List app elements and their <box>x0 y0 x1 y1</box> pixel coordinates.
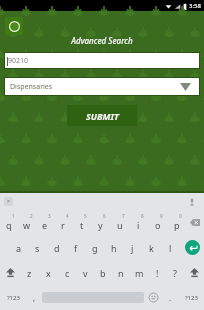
staticText: t <box>80 219 84 231</box>
staticText: ?123 <box>7 294 20 302</box>
button[interactable]: SUBMIT <box>67 105 137 126</box>
button[interactable]: ?123 <box>0 285 26 310</box>
button[interactable]: x <box>39 260 58 285</box>
staticText: m <box>135 267 144 279</box>
staticText: c <box>65 267 70 279</box>
staticText: , <box>33 292 36 303</box>
button[interactable]: ! <box>148 260 166 285</box>
staticText: ! <box>156 267 159 279</box>
staticText: x <box>46 267 51 279</box>
button[interactable]: Expand suggestions <box>4 197 13 206</box>
button[interactable]: 0 <box>167 210 186 235</box>
staticText: y <box>98 219 103 231</box>
staticText: 7 <box>122 213 125 219</box>
button[interactable]: Enter <box>180 235 204 260</box>
staticText: 8 <box>141 213 144 219</box>
staticText: 9 <box>160 213 163 219</box>
button[interactable]: 7 <box>110 210 129 235</box>
staticText: 1 <box>12 213 15 219</box>
staticText: Dispensaries <box>10 82 53 92</box>
button[interactable]: 90210 <box>5 53 199 68</box>
staticText: SUBMIT <box>86 110 119 122</box>
button[interactable]: 4 <box>54 210 72 235</box>
button[interactable]: Voice input <box>187 197 197 207</box>
staticText: q <box>6 219 12 231</box>
staticText: o <box>155 219 161 231</box>
button[interactable]: m <box>130 260 148 285</box>
staticText: 90210 <box>8 56 29 66</box>
staticText: > <box>7 198 10 205</box>
staticText: r <box>61 219 65 231</box>
button[interactable]: c <box>58 260 76 285</box>
button[interactable]: b <box>94 260 112 285</box>
button[interactable]: z <box>20 260 39 285</box>
button[interactable]: s <box>28 235 47 260</box>
staticText: h <box>111 242 117 254</box>
button[interactable]: ?123 <box>178 285 204 310</box>
staticText: k <box>149 242 154 254</box>
button[interactable]: 6 <box>91 210 110 235</box>
button[interactable]: Shift <box>184 260 204 285</box>
staticText: d <box>54 242 60 254</box>
button[interactable]: Emoji <box>144 285 162 310</box>
staticText: u <box>117 219 123 231</box>
staticText: 3:58 <box>189 2 201 10</box>
staticText: n <box>118 267 124 279</box>
button[interactable]: n <box>112 260 130 285</box>
button[interactable]: l <box>161 235 180 260</box>
staticText: Advanced Search <box>0 35 204 46</box>
staticText: 2 <box>30 213 33 219</box>
button[interactable]: 8 <box>129 210 148 235</box>
staticText: ?123 <box>185 294 198 302</box>
staticText: 6 <box>103 213 106 219</box>
button[interactable]: , <box>26 285 42 310</box>
button[interactable]: v <box>76 260 94 285</box>
staticText: l <box>169 242 172 254</box>
staticText: g <box>92 242 98 254</box>
button[interactable]: k <box>142 235 161 260</box>
button[interactable]: Shift <box>0 260 20 285</box>
staticText: . <box>169 292 172 303</box>
button[interactable]: 9 <box>148 210 167 235</box>
staticText: v <box>83 267 88 279</box>
button[interactable]: App icon <box>5 17 23 35</box>
staticText: ? <box>173 267 177 279</box>
staticText: w <box>23 219 31 231</box>
button[interactable]: 1 <box>0 210 18 235</box>
button[interactable]: Dispensaries <box>5 78 199 95</box>
button[interactable]: Backspace <box>186 210 204 235</box>
button[interactable]: 3 <box>36 210 54 235</box>
staticText: f <box>74 242 78 254</box>
staticText: 3 <box>48 213 51 219</box>
staticText: 0 <box>179 213 182 219</box>
staticText: 4 <box>66 213 69 219</box>
staticText: a <box>16 242 22 254</box>
button[interactable]: a <box>9 235 28 260</box>
button[interactable]: h <box>104 235 123 260</box>
staticText: j <box>131 242 134 254</box>
button[interactable]: . <box>162 285 178 310</box>
staticText: b <box>100 267 106 279</box>
staticText: 5 <box>84 213 87 219</box>
staticText: e <box>42 219 48 231</box>
button[interactable]: 5 <box>72 210 91 235</box>
button[interactable]: f <box>66 235 85 260</box>
button[interactable]: ? <box>166 260 184 285</box>
button[interactable]: d <box>47 235 66 260</box>
button[interactable]: 2 <box>18 210 36 235</box>
staticText: s <box>35 242 40 254</box>
staticText: p <box>174 219 180 231</box>
button[interactable]: j <box>123 235 142 260</box>
button[interactable]: g <box>85 235 104 260</box>
staticText: i <box>137 219 140 231</box>
staticText: z <box>27 267 32 279</box>
